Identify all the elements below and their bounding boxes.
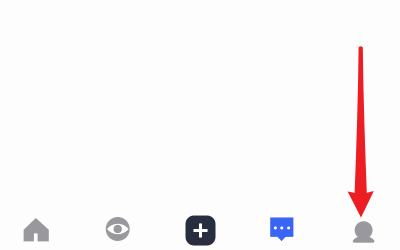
button[interactable]: Profile [353, 219, 374, 241]
button[interactable]: Home [24, 218, 49, 241]
button[interactable]: Messages [270, 217, 293, 241]
button[interactable]: Discover [106, 217, 130, 241]
button[interactable]: Create [185, 215, 215, 245]
